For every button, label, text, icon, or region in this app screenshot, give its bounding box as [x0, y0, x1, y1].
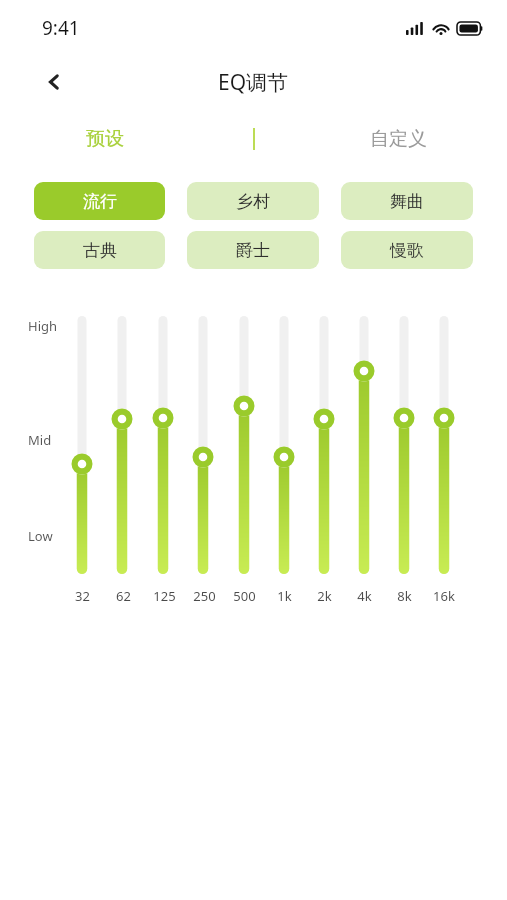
staticText: 乡村 [236, 191, 270, 212]
button[interactable]: Back [34, 62, 74, 102]
button[interactable]: 自定义 [362, 124, 435, 154]
staticText: 16k [433, 587, 455, 605]
staticText: 慢歌 [390, 240, 424, 261]
button[interactable]: 预设 [78, 124, 132, 154]
staticText: 预设 [86, 127, 124, 151]
staticText: 流行 [83, 191, 117, 212]
staticText: High [28, 317, 58, 335]
staticText: 125 [153, 587, 176, 605]
staticText: 1k [277, 587, 292, 605]
staticText: 32 [75, 587, 90, 605]
staticText: 9:41 [42, 15, 80, 41]
button[interactable]: 爵士 [187, 231, 319, 269]
staticText: 250 [193, 587, 216, 605]
button[interactable]: 舞曲 [341, 182, 473, 220]
staticText: 自定义 [370, 127, 427, 151]
button[interactable]: 乡村 [187, 182, 319, 220]
staticText: 2k [317, 587, 332, 605]
staticText: 4k [357, 587, 372, 605]
button[interactable]: 慢歌 [341, 231, 473, 269]
staticText: 62 [116, 587, 131, 605]
staticText: Low [28, 527, 53, 545]
staticText: EQ调节 [218, 68, 289, 97]
staticText: 爵士 [236, 240, 270, 261]
staticText: 古典 [83, 240, 117, 261]
staticText: 500 [233, 587, 256, 605]
staticText: 8k [397, 587, 412, 605]
button[interactable]: 古典 [34, 231, 165, 269]
staticText: 舞曲 [390, 191, 424, 212]
button[interactable]: 流行 [34, 182, 165, 220]
staticText: Mid [28, 431, 52, 449]
